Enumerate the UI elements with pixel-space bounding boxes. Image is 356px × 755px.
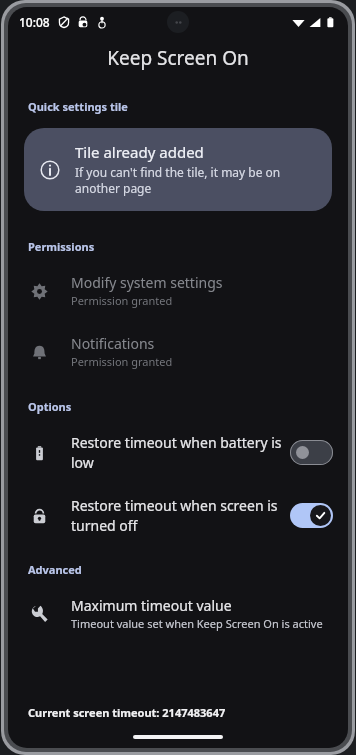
button[interactable]: Off: [290, 440, 333, 465]
staticText: If you can't find the tile, it may be on…: [75, 164, 314, 197]
staticText: Timeout value set when Keep Screen On is…: [71, 616, 323, 631]
staticText: Quick settings tile: [28, 99, 128, 114]
staticText: Permission granted: [71, 293, 173, 308]
staticText: Modify system settings: [71, 273, 223, 292]
staticText: Permissions: [28, 239, 95, 254]
staticText: Restore timeout when battery is low: [71, 433, 282, 472]
button[interactable]: Tile already added: [24, 128, 332, 211]
staticText: Advanced: [28, 562, 82, 577]
button[interactable]: Notifications: [8, 328, 348, 375]
staticText: Permission granted: [71, 354, 173, 369]
button[interactable]: On: [290, 503, 333, 528]
staticText: 10:08: [19, 14, 50, 30]
button[interactable]: Restore timeout when battery is low: [8, 426, 348, 479]
button[interactable]: Modify system settings: [8, 267, 348, 314]
staticText: Restore timeout when screen is turned of…: [71, 496, 282, 535]
button[interactable]: Maximum timeout value: [8, 590, 348, 637]
staticText: Maximum timeout value: [71, 596, 232, 615]
staticText: Tile already added: [75, 142, 204, 162]
staticText: Options: [28, 399, 72, 414]
staticText: Keep Screen On: [8, 45, 348, 71]
button[interactable]: Restore timeout when screen is turned of…: [8, 489, 348, 542]
staticText: Current screen timeout: 2147483647: [28, 705, 226, 720]
staticText: Notifications: [71, 334, 155, 353]
